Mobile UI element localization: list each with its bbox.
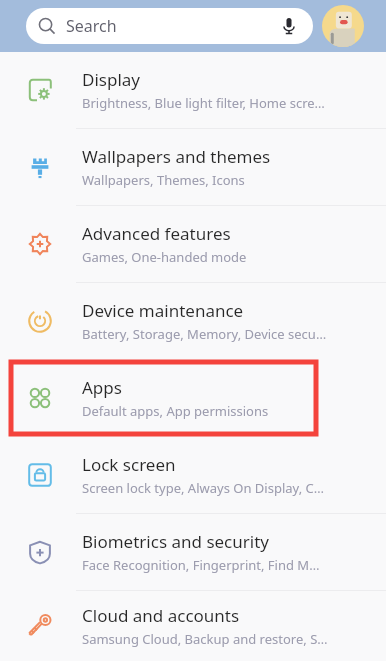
button[interactable]: Advanced features	[0, 206, 386, 282]
staticText: Default apps, App permissions	[82, 402, 269, 420]
staticText: Battery, Storage, Memory, Device secu…	[82, 325, 327, 343]
staticText: Apps	[82, 376, 122, 399]
button[interactable]: Wallpapers and themes	[0, 129, 386, 205]
staticText: Games, One-handed mode	[82, 248, 247, 266]
staticText: Device maintenance	[82, 299, 244, 322]
button[interactable]: Lock screen	[0, 437, 386, 513]
button[interactable]: Apps	[0, 360, 386, 436]
staticText: Screen lock type, Always On Display, C…	[82, 479, 325, 497]
staticText: Lock screen	[82, 453, 176, 476]
staticText: Brightness, Blue light filter, Home scre…	[82, 94, 325, 112]
staticText: Search	[66, 15, 117, 37]
staticText: Face Recognition, Fingerprint, Find M…	[82, 556, 320, 574]
button[interactable]: Voice search	[277, 14, 301, 38]
staticText: Samsung Cloud, Backup and restore, S…	[82, 630, 328, 648]
staticText: Cloud and accounts	[82, 604, 240, 627]
staticText: Wallpapers and themes	[82, 145, 271, 168]
button[interactable]: Display	[0, 52, 386, 128]
staticText: Wallpapers, Themes, Icons	[82, 171, 245, 189]
button[interactable]: Cloud and accounts	[0, 591, 386, 661]
button[interactable]: Device maintenance	[0, 283, 386, 359]
button[interactable]: Search	[26, 8, 313, 44]
staticText: Advanced features	[82, 222, 231, 245]
staticText: Biometrics and security	[82, 530, 269, 553]
staticText: Display	[82, 68, 140, 91]
button[interactable]: Account	[322, 5, 364, 47]
button[interactable]: Biometrics and security	[0, 514, 386, 590]
